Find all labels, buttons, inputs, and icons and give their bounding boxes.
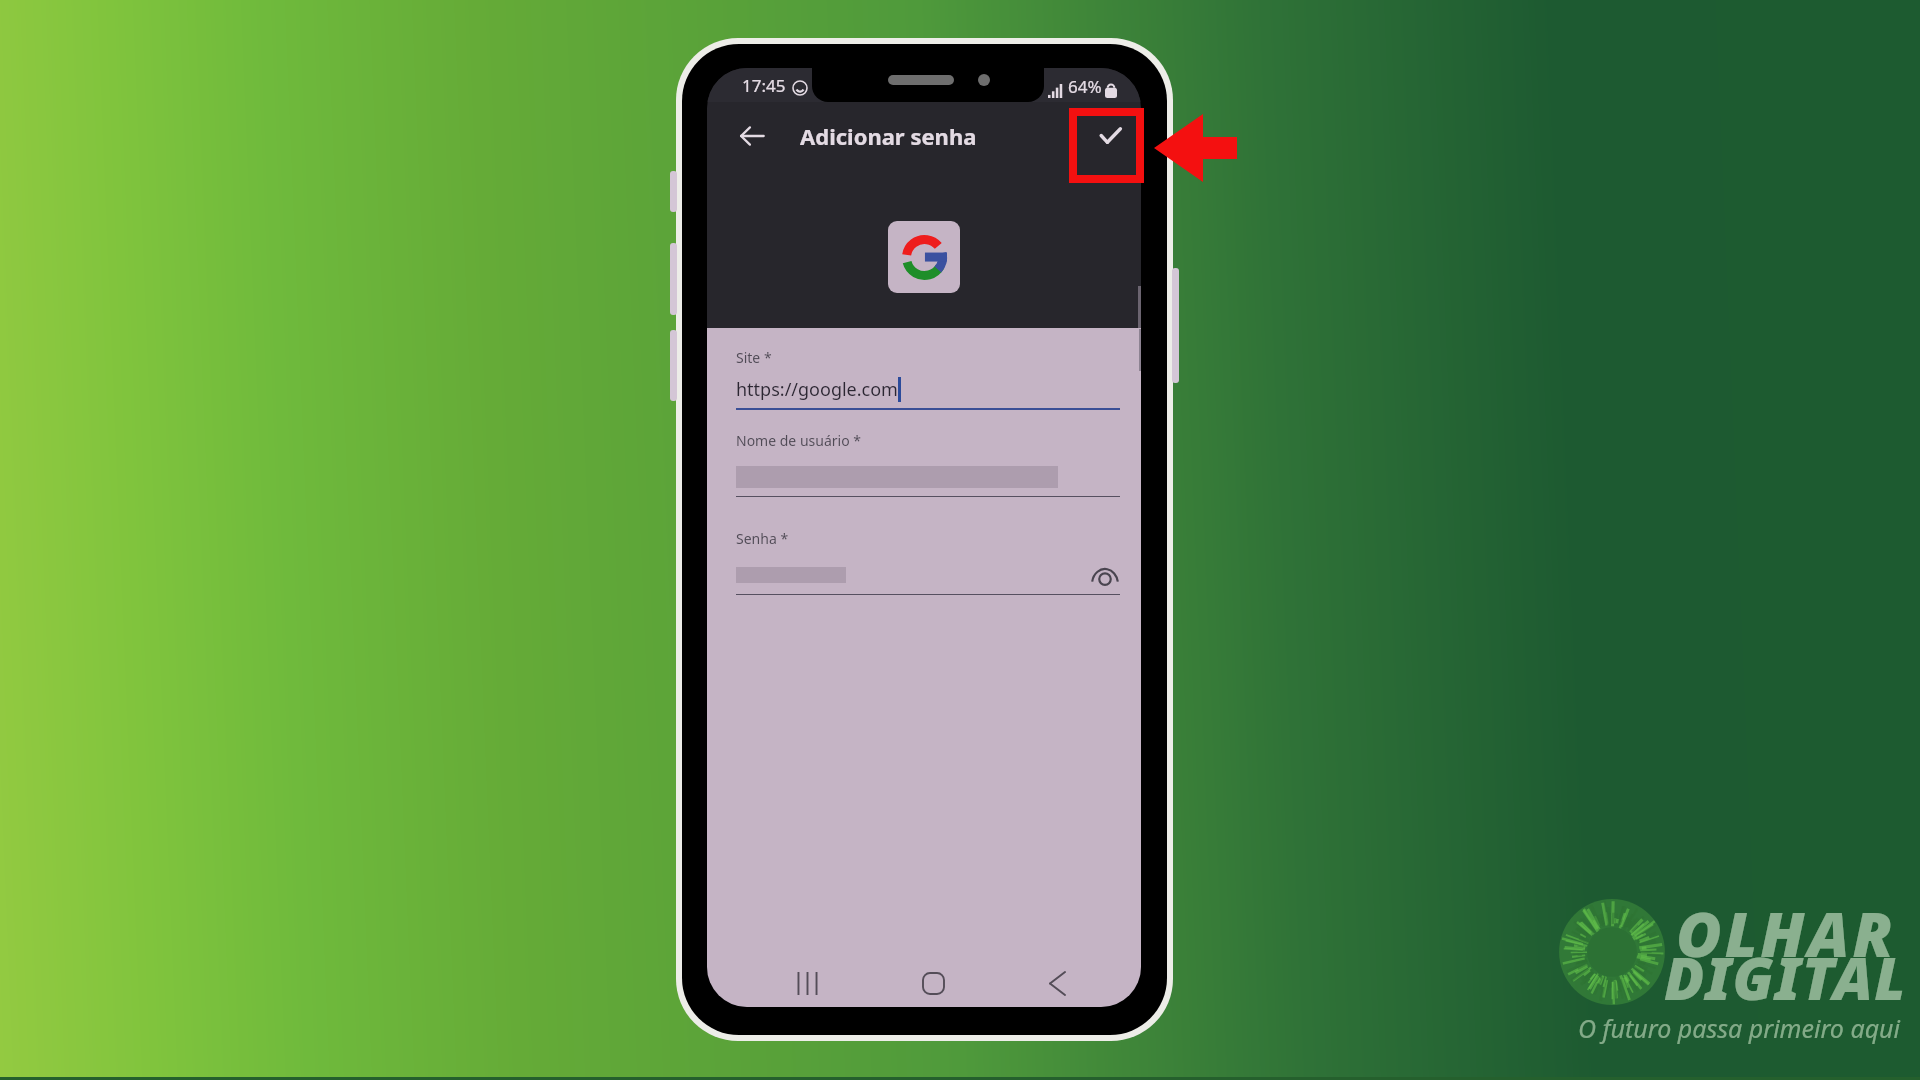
staticText: https://google.com bbox=[736, 377, 898, 402]
button[interactable]: Salvar bbox=[1087, 112, 1133, 158]
staticText: Nome de usuário * bbox=[736, 431, 861, 450]
staticText: Site * bbox=[736, 348, 772, 367]
staticText: Senha * bbox=[736, 529, 789, 548]
staticText: OLHAR bbox=[1676, 891, 1896, 975]
staticText: DIGITAL bbox=[1664, 937, 1907, 1017]
staticText: 64% bbox=[1068, 75, 1102, 98]
staticText: O futuro passa primeiro aqui bbox=[1578, 1011, 1901, 1045]
button[interactable]: Início bbox=[909, 960, 957, 1007]
button[interactable]: Recentes bbox=[783, 960, 831, 1007]
staticText: 17:45 bbox=[742, 74, 786, 97]
button[interactable]: Voltar bbox=[729, 113, 775, 159]
button[interactable]: Voltar bbox=[1033, 960, 1081, 1007]
staticText: Adicionar senha bbox=[800, 121, 977, 151]
